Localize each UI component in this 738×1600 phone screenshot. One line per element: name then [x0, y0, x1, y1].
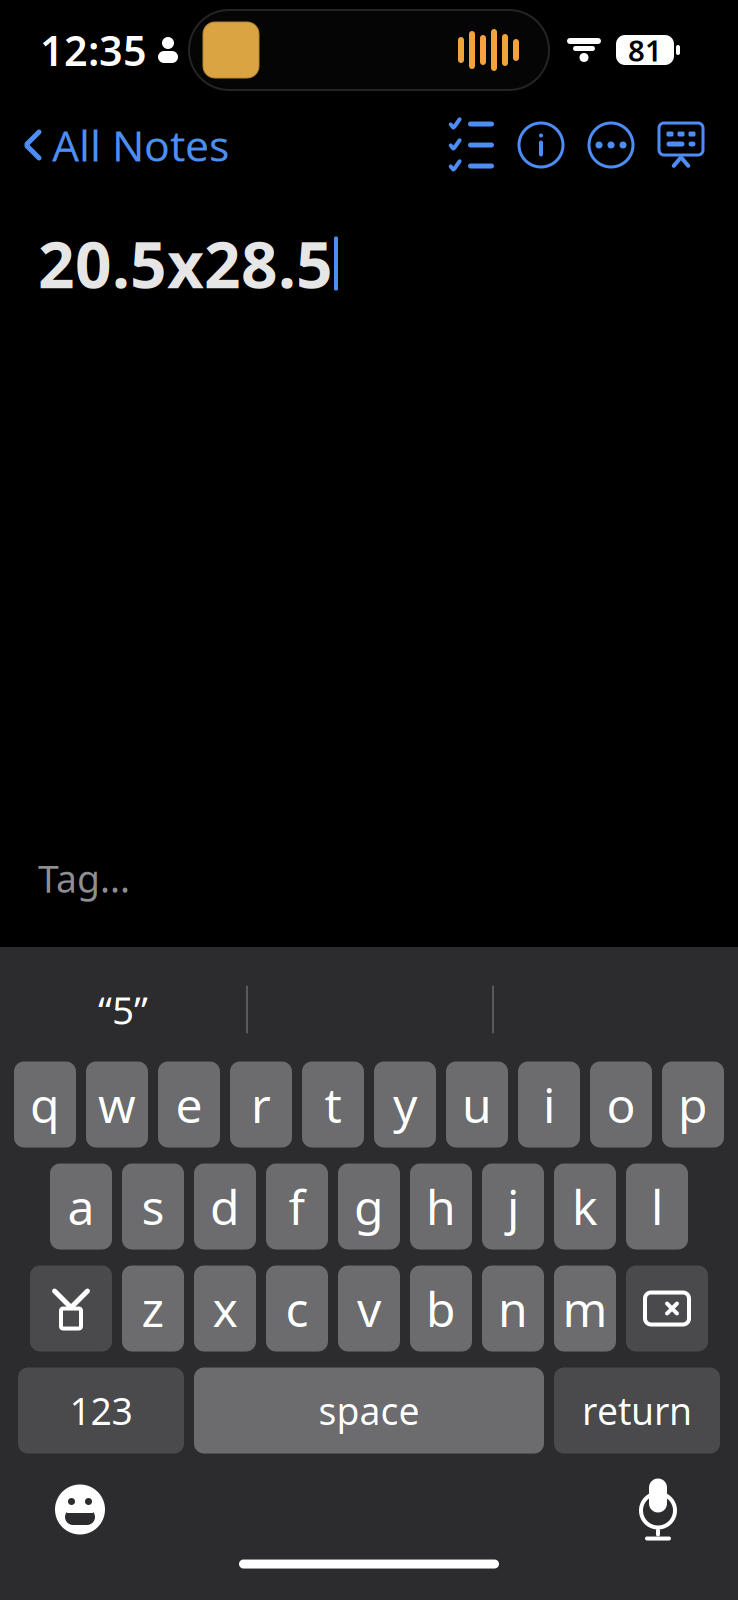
staticText: i — [543, 1073, 555, 1136]
staticText: 123 — [69, 1386, 132, 1435]
staticText: t — [324, 1073, 341, 1136]
button[interactable]: Delete — [626, 1265, 708, 1351]
staticText: a — [67, 1175, 94, 1238]
button[interactable]: Hide Keyboard — [646, 115, 716, 175]
button[interactable]: w — [86, 1061, 148, 1147]
staticText: d — [210, 1175, 240, 1238]
staticText: z — [141, 1277, 164, 1340]
button[interactable]: Checklist — [436, 115, 506, 175]
button[interactable]: u — [446, 1061, 508, 1147]
staticText: x — [212, 1277, 237, 1340]
staticText: u — [462, 1073, 492, 1136]
button[interactable]: m — [554, 1265, 616, 1351]
staticText: m — [562, 1277, 607, 1340]
staticText: w — [98, 1073, 136, 1136]
staticText: space — [318, 1386, 419, 1435]
staticText: l — [651, 1175, 663, 1238]
staticText: j — [507, 1175, 519, 1238]
button[interactable]: b — [410, 1265, 472, 1351]
button[interactable]: Shift — [30, 1265, 112, 1351]
button[interactable]: Emoji — [30, 1466, 130, 1552]
button[interactable]: space — [194, 1367, 544, 1453]
button[interactable]: q — [14, 1061, 76, 1147]
button[interactable]: Tag... — [38, 845, 130, 911]
staticText: Tag... — [38, 853, 130, 903]
button[interactable]: s — [122, 1163, 184, 1249]
button[interactable]: c — [266, 1265, 328, 1351]
staticText: 81 — [628, 30, 662, 69]
staticText: r — [251, 1073, 271, 1136]
button[interactable]: v — [338, 1265, 400, 1351]
staticText: y — [393, 1073, 417, 1136]
staticText: n — [498, 1277, 528, 1340]
button[interactable]: l — [626, 1163, 688, 1249]
button[interactable]: 123 — [18, 1367, 184, 1453]
staticText: 20.5x28.5 — [38, 221, 333, 306]
button[interactable]: a — [50, 1163, 112, 1249]
staticText: return — [582, 1386, 692, 1435]
button[interactable]: h — [410, 1163, 472, 1249]
button[interactable]: f — [266, 1163, 328, 1249]
staticText: q — [30, 1073, 60, 1136]
button[interactable]: n — [482, 1265, 544, 1351]
button[interactable]: o — [590, 1061, 652, 1147]
button[interactable]: t — [302, 1061, 364, 1147]
button[interactable]: g — [338, 1163, 400, 1249]
button[interactable]: e — [158, 1061, 220, 1147]
button[interactable]: r — [230, 1061, 292, 1147]
button[interactable]: return — [554, 1367, 720, 1453]
button[interactable]: More — [576, 115, 646, 175]
staticText: All Notes — [52, 117, 229, 173]
button[interactable]: All Notes — [0, 107, 229, 183]
staticText: k — [572, 1175, 598, 1238]
staticText: p — [678, 1073, 708, 1136]
button[interactable]: “5” — [0, 969, 246, 1049]
staticText: g — [354, 1175, 384, 1238]
button[interactable]: i — [518, 1061, 580, 1147]
staticText: s — [141, 1175, 164, 1238]
staticText: b — [426, 1277, 456, 1340]
staticText: c — [285, 1277, 308, 1340]
button[interactable]: p — [662, 1061, 724, 1147]
staticText: v — [357, 1277, 381, 1340]
staticText: e — [175, 1073, 202, 1136]
button[interactable]: z — [122, 1265, 184, 1351]
staticText: f — [288, 1175, 305, 1238]
button[interactable]: j — [482, 1163, 544, 1249]
button[interactable]: Dictation — [608, 1466, 708, 1552]
staticText: o — [606, 1073, 635, 1136]
button[interactable]: y — [374, 1061, 436, 1147]
button[interactable]: k — [554, 1163, 616, 1249]
staticText: “5” — [98, 984, 148, 1035]
button[interactable]: x — [194, 1265, 256, 1351]
staticText: h — [426, 1175, 456, 1238]
staticText: 12:35 — [40, 23, 147, 77]
button[interactable]: Info — [506, 115, 576, 175]
button[interactable]: d — [194, 1163, 256, 1249]
